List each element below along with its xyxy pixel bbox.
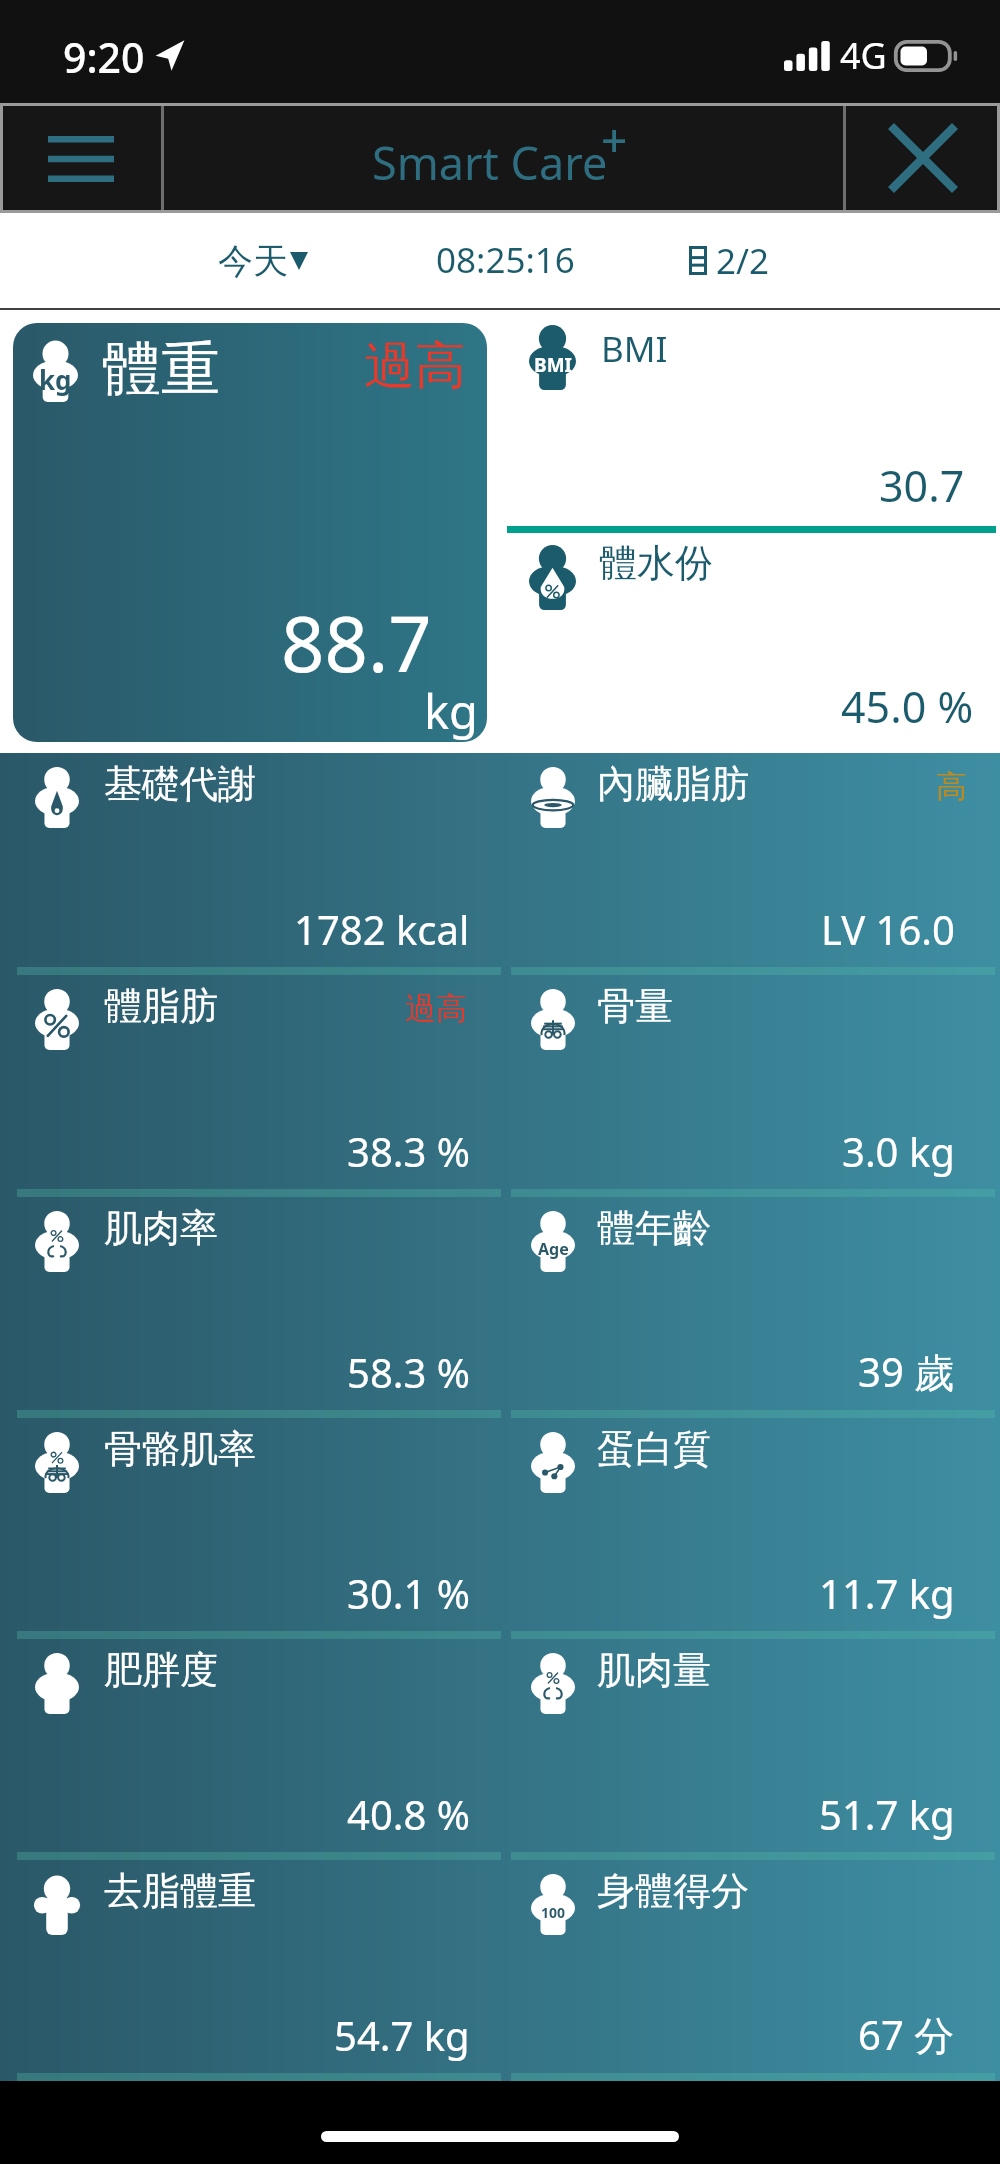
staticText: 肥胖度: [104, 1646, 218, 1694]
staticText: 38.3 %: [347, 1124, 470, 1178]
staticText: kg: [39, 362, 72, 397]
staticText: 30.1 %: [347, 1566, 470, 1620]
staticText: BMI: [601, 325, 668, 373]
staticText: 30.7: [879, 456, 965, 515]
button[interactable]: Age: [500, 1197, 1000, 1410]
staticText: 身體得分: [597, 1867, 749, 1915]
staticText: 45.0 %: [841, 677, 974, 736]
button[interactable]: 今天: [218, 213, 308, 308]
staticText: 39 歲: [858, 1344, 955, 1399]
button[interactable]: 肌肉量: [500, 1639, 1000, 1852]
staticText: LV 16.0: [821, 902, 955, 956]
staticText: Age: [538, 1238, 569, 1260]
staticText: 高: [936, 767, 967, 806]
button[interactable]: 體脂肪: [0, 975, 500, 1189]
staticText: 蛋白質: [597, 1425, 711, 1473]
button[interactable]: Menu: [0, 103, 161, 213]
staticText: 100: [541, 1903, 566, 1922]
staticText: 11.7 kg: [819, 1566, 955, 1620]
staticText: BMI: [534, 352, 572, 378]
staticText: 體水份: [599, 539, 713, 587]
staticText: 58.3 %: [347, 1345, 470, 1399]
staticText: 肌肉量: [597, 1646, 711, 1694]
staticText: 去脂體重: [104, 1867, 256, 1915]
staticText: 2/2: [716, 237, 770, 285]
staticText: 肌肉率: [104, 1204, 218, 1252]
staticText: 1782 kcal: [294, 902, 470, 956]
staticText: 體年齡: [597, 1204, 711, 1252]
staticText: 基礎代謝: [104, 760, 256, 808]
button[interactable]: Close: [846, 103, 1000, 213]
staticText: 過高: [405, 989, 467, 1028]
button[interactable]: 基礎代謝: [0, 753, 500, 967]
staticText: 88.7: [281, 591, 432, 695]
staticText: 今天: [218, 239, 288, 283]
staticText: 9:20: [63, 29, 145, 85]
staticText: 67 分: [858, 2007, 955, 2062]
staticText: 08:25:16: [436, 236, 575, 284]
staticText: kg: [424, 679, 479, 742]
staticText: 內臟脂肪: [597, 760, 749, 808]
staticText: 骨骼肌率: [104, 1425, 256, 1473]
button[interactable]: 2/2: [689, 213, 770, 308]
staticText: 骨量: [597, 982, 673, 1030]
staticText: 體脂肪: [104, 982, 218, 1030]
button[interactable]: 肌肉率: [0, 1197, 500, 1410]
button[interactable]: 骨量: [500, 975, 1000, 1189]
button[interactable]: 100: [500, 1860, 1000, 2073]
staticText: 51.7 kg: [819, 1787, 955, 1841]
staticText: 體重: [102, 332, 220, 406]
staticText: 40.8 %: [347, 1787, 470, 1841]
staticText: 4G: [840, 31, 887, 80]
button[interactable]: 肥胖度: [0, 1639, 500, 1852]
button[interactable]: 蛋白質: [500, 1418, 1000, 1631]
button[interactable]: 去脂體重: [0, 1860, 500, 2073]
button[interactable]: 骨骼肌率: [0, 1418, 500, 1631]
staticText: Smart Care: [372, 132, 608, 193]
staticText: +: [601, 108, 628, 171]
staticText: 54.7 kg: [334, 2008, 470, 2062]
button[interactable]: kg: [13, 323, 487, 742]
staticText: 3.0 kg: [842, 1124, 955, 1178]
button[interactable]: 內臟脂肪: [500, 753, 1000, 967]
button[interactable]: Smart Care: [164, 103, 843, 213]
staticText: 過高: [364, 334, 466, 398]
